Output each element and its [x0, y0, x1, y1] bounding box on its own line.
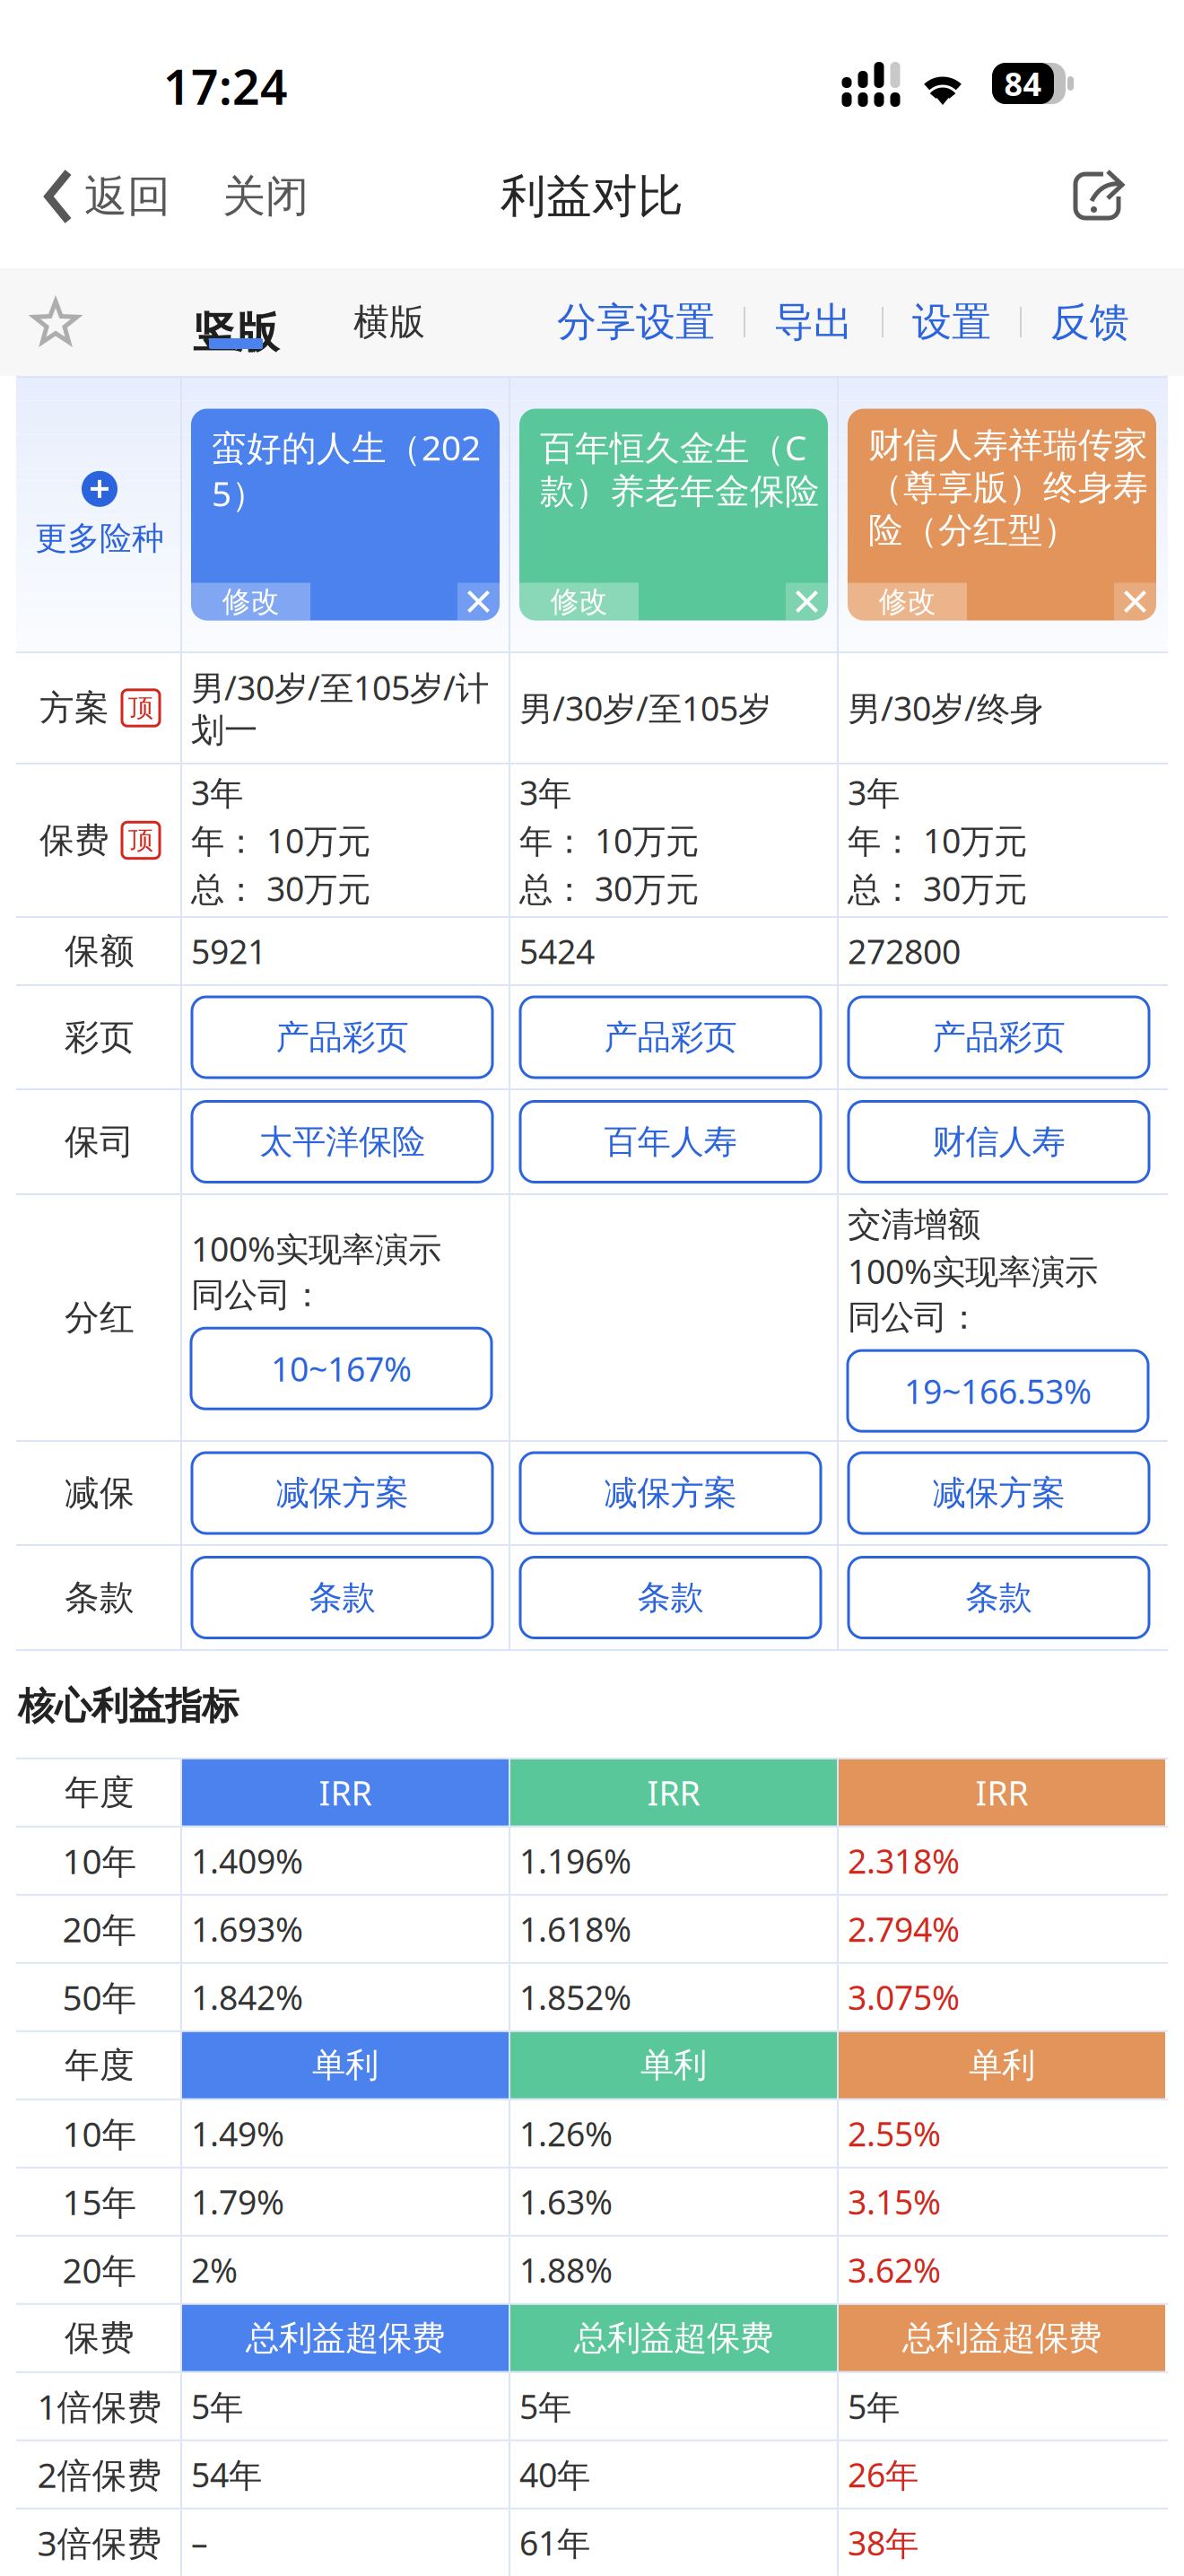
button[interactable]: 10~167% [191, 1328, 492, 1409]
staticText: 10年 [62, 1838, 137, 1884]
staticText: 修改 [879, 584, 936, 619]
button[interactable]: 条款 [849, 1557, 1149, 1638]
staticText: 总： 30万元 [191, 866, 370, 911]
staticText: 交清增额 [848, 1204, 980, 1245]
button[interactable]: 移除 [786, 583, 828, 620]
button[interactable]: 竖版 [178, 268, 294, 376]
staticText: 财信人寿 [932, 1121, 1065, 1162]
button[interactable]: 分享设置 [557, 268, 715, 376]
staticText: 百年人寿 [604, 1121, 737, 1162]
button[interactable]: 导出 [774, 268, 853, 376]
staticText: 太平洋保险 [259, 1121, 425, 1162]
staticText: 19~166.53% [904, 1369, 1092, 1413]
staticText: 50年 [62, 1974, 137, 2020]
staticText: 年度 [65, 1771, 135, 1814]
staticText: 3倍保费 [37, 2520, 162, 2566]
staticText: 年： 10万元 [848, 818, 1027, 863]
staticText: 单利 [969, 2045, 1035, 2086]
button[interactable]: 返回 [36, 153, 178, 240]
staticText: 84 [1004, 62, 1042, 105]
button[interactable]: 设置 [912, 268, 991, 376]
staticText: 15年 [62, 2179, 137, 2225]
staticText: 1.26% [519, 2111, 613, 2156]
staticText: 5424 [519, 929, 595, 973]
staticText: 100%实现率演示 [848, 1249, 1098, 1293]
staticText: 减保 [65, 1472, 135, 1514]
staticText: 同公司： [848, 1297, 980, 1338]
button[interactable]: 产品彩页 [192, 997, 492, 1078]
staticText: 竖版 [193, 306, 279, 359]
staticText: 20年 [62, 2247, 137, 2293]
staticText: 分享设置 [557, 298, 715, 346]
staticText: 总： 30万元 [519, 866, 699, 911]
staticText: 1.693% [191, 1907, 303, 1951]
staticText: 2.794% [848, 1907, 960, 1951]
staticText: 2.55% [848, 2111, 941, 2156]
staticText: IRR [975, 1770, 1028, 1815]
staticText: 3.075% [848, 1975, 960, 2019]
button[interactable]: 修改 [848, 583, 967, 620]
staticText: 返回 [84, 170, 170, 223]
staticText: 1.852% [519, 1975, 631, 2019]
button[interactable]: 条款 [192, 1557, 492, 1638]
staticText: 1.842% [191, 1975, 303, 2019]
button[interactable]: 移除 [457, 583, 500, 620]
staticText: 保额 [65, 930, 135, 972]
staticText: 总： 30万元 [848, 866, 1027, 911]
staticText: 减保方案 [276, 1472, 409, 1514]
staticText: IRR [647, 1770, 700, 1815]
staticText: 男/30岁/终身 [848, 686, 1043, 730]
button[interactable]: 产品彩页 [520, 997, 821, 1078]
staticText: 3.62% [848, 2248, 941, 2292]
button[interactable]: 更多险种 [19, 378, 180, 651]
staticText: 20年 [62, 1906, 137, 1952]
staticText: 2.318% [848, 1838, 960, 1883]
staticText: 利益对比 [501, 169, 683, 224]
button[interactable]: 分享 [1056, 153, 1142, 240]
button[interactable]: 关闭 [203, 153, 328, 240]
button[interactable]: 修改 [191, 583, 310, 620]
staticText: 条款 [637, 1577, 704, 1618]
button[interactable]: 条款 [520, 1557, 821, 1638]
staticText: 减保方案 [932, 1472, 1065, 1514]
staticText: IRR [319, 1770, 372, 1815]
staticText: 彩页 [65, 1016, 135, 1059]
staticText: 财信人寿祥瑞传家（尊享版）终身寿险（分红型） [868, 424, 1148, 552]
button[interactable]: 横版 [335, 268, 443, 376]
button[interactable]: 修改 [519, 583, 639, 620]
button[interactable]: 反馈 [1050, 268, 1129, 376]
button[interactable]: 收藏 [22, 270, 90, 378]
button[interactable]: 产品彩页 [849, 997, 1149, 1078]
button[interactable]: 减保方案 [520, 1453, 821, 1533]
button[interactable]: 19~166.53% [848, 1350, 1148, 1431]
staticText: 总利益超保费 [574, 2317, 773, 2359]
staticText: 17:24 [163, 54, 288, 118]
staticText: 年： 10万元 [519, 818, 699, 863]
button[interactable]: 减保方案 [849, 1453, 1149, 1533]
button[interactable]: 移除 [1114, 583, 1156, 620]
staticText: 关闭 [222, 170, 309, 223]
staticText: 顶 [128, 825, 153, 856]
staticText: 年度 [65, 2044, 135, 2087]
staticText: 方案 [39, 687, 109, 729]
button[interactable]: 财信人寿 [849, 1101, 1149, 1182]
staticText: 3.15% [848, 2179, 941, 2224]
staticText: 5年 [519, 2384, 571, 2428]
staticText: – [191, 2520, 208, 2565]
button[interactable]: 减保方案 [192, 1453, 492, 1533]
staticText: 条款 [309, 1577, 375, 1618]
staticText: 横版 [353, 300, 425, 344]
staticText: 导出 [774, 298, 853, 346]
staticText: 保费 [39, 819, 109, 862]
staticText: 保司 [65, 1120, 135, 1163]
staticText: 条款 [65, 1576, 135, 1619]
staticText: 5921 [191, 929, 266, 973]
staticText: 26年 [848, 2452, 918, 2497]
staticText: 总利益超保费 [902, 2317, 1101, 2359]
button[interactable]: 太平洋保险 [192, 1101, 492, 1182]
staticText: 修改 [550, 584, 608, 619]
button[interactable]: 百年人寿 [520, 1101, 821, 1182]
staticText: 3年 [519, 770, 571, 814]
staticText: 272800 [848, 929, 961, 973]
staticText: 1.88% [519, 2248, 613, 2292]
